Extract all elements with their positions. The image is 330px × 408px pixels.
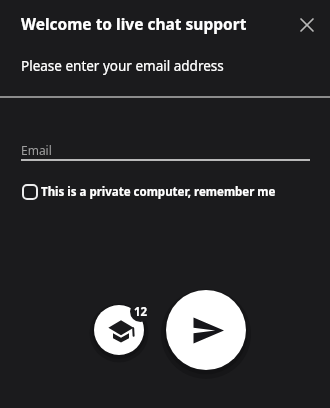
button[interactable] — [294, 12, 320, 38]
staticText: Email — [21, 142, 52, 158]
staticText: 12 — [134, 304, 148, 320]
button[interactable] — [166, 290, 246, 370]
staticText: Welcome to live chat support — [21, 13, 247, 34]
staticText: This is a private computer, remember me — [41, 184, 276, 200]
button[interactable]: This is a private computer, remember me — [21, 183, 276, 201]
button[interactable]: Email — [21, 130, 310, 161]
staticText: Please enter your email address — [21, 57, 224, 75]
button[interactable] — [94, 305, 144, 355]
